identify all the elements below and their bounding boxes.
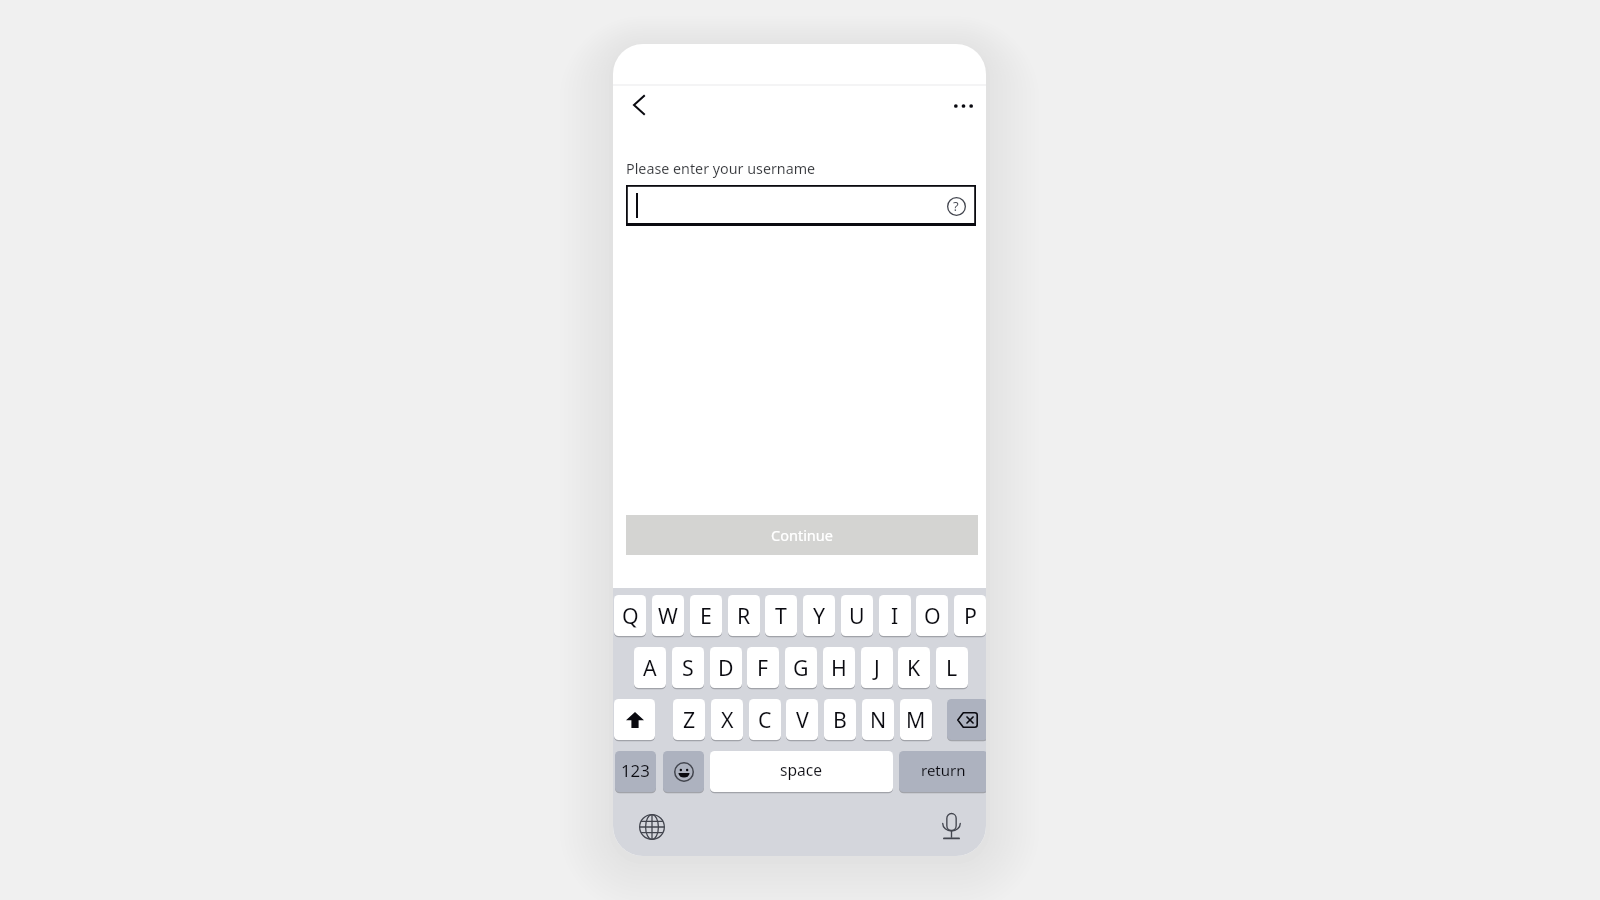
button[interactable]: O xyxy=(916,595,948,636)
staticText: K xyxy=(907,653,921,682)
button[interactable]: J xyxy=(861,647,893,688)
staticText: D xyxy=(718,653,734,682)
staticText: R xyxy=(737,601,751,630)
staticText: Please enter your username xyxy=(626,159,816,178)
button[interactable]: S xyxy=(672,647,704,688)
staticText: A xyxy=(643,653,657,682)
staticText: N xyxy=(870,705,887,734)
button[interactable]: Y xyxy=(803,595,835,636)
button[interactable]: F xyxy=(747,647,779,688)
staticText: ? xyxy=(953,197,959,215)
button[interactable]: R xyxy=(728,595,760,636)
button[interactable]: V xyxy=(786,699,818,740)
staticText: B xyxy=(833,705,847,734)
staticText: Y xyxy=(813,601,826,630)
staticText: return xyxy=(921,760,966,780)
button[interactable]: M xyxy=(900,699,932,740)
button[interactable]: T xyxy=(765,595,797,636)
staticText: 123 xyxy=(621,759,650,782)
staticText: W xyxy=(658,601,678,630)
button[interactable]: P xyxy=(954,595,986,636)
staticText: space xyxy=(780,759,823,780)
staticText: U xyxy=(849,601,865,630)
button[interactable]: H xyxy=(823,647,855,688)
staticText: F xyxy=(757,653,769,682)
staticText: Continue xyxy=(771,525,833,545)
button[interactable]: Help xyxy=(945,195,967,217)
staticText: V xyxy=(796,705,809,734)
button[interactable]: E xyxy=(690,595,722,636)
button[interactable]: D xyxy=(710,647,742,688)
staticText: J xyxy=(874,653,880,682)
button[interactable]: More options xyxy=(946,90,980,122)
staticText: Q xyxy=(622,601,639,630)
button[interactable]: Back xyxy=(622,89,656,121)
staticText: I xyxy=(891,601,899,630)
button[interactable]: Dictate xyxy=(938,812,965,840)
button[interactable]: Backspace xyxy=(947,699,986,740)
staticText: O xyxy=(924,601,941,630)
staticText: L xyxy=(946,653,958,682)
button[interactable]: K xyxy=(898,647,930,688)
staticText: Z xyxy=(683,705,696,734)
button[interactable]: space xyxy=(710,751,893,792)
button[interactable]: Help xyxy=(626,185,976,226)
button[interactable]: Continue xyxy=(626,515,978,555)
button[interactable]: B xyxy=(824,699,856,740)
button[interactable]: I xyxy=(879,595,911,636)
staticText: S xyxy=(682,653,694,682)
button[interactable]: C xyxy=(749,699,781,740)
button[interactable]: L xyxy=(936,647,968,688)
staticText: E xyxy=(700,601,712,630)
button[interactable]: Z xyxy=(673,699,705,740)
button[interactable]: A xyxy=(634,647,666,688)
button[interactable]: return xyxy=(899,751,986,792)
button[interactable]: W xyxy=(652,595,684,636)
button[interactable]: X xyxy=(711,699,743,740)
staticText: M xyxy=(906,705,926,734)
staticText: G xyxy=(793,653,809,682)
staticText: P xyxy=(964,601,977,630)
staticText: C xyxy=(758,705,772,734)
button[interactable]: 123 xyxy=(615,751,656,792)
staticText: H xyxy=(831,653,847,682)
button[interactable]: Change keyboard xyxy=(639,814,665,840)
button[interactable]: N xyxy=(862,699,894,740)
staticText: X xyxy=(721,705,734,734)
button[interactable]: Emoji xyxy=(663,751,704,792)
staticText: T xyxy=(775,601,787,630)
button[interactable]: U xyxy=(841,595,873,636)
button[interactable]: G xyxy=(785,647,817,688)
button[interactable]: Shift xyxy=(614,699,655,740)
button[interactable]: Q xyxy=(614,595,646,636)
